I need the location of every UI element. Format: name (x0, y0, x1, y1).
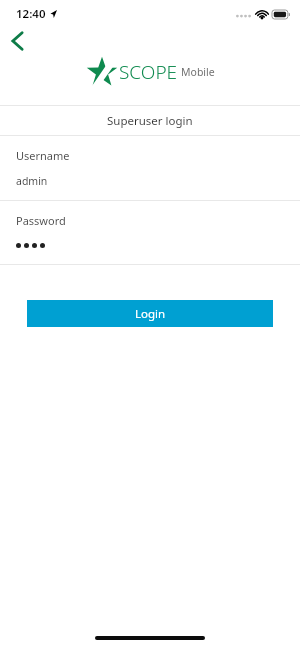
staticText: admin (16, 174, 48, 188)
staticText: Mobile (181, 65, 215, 79)
staticText: Username (16, 148, 70, 163)
staticText: Superuser login (107, 113, 193, 129)
staticText: Login (135, 306, 166, 322)
button[interactable]: Login (27, 300, 273, 327)
button[interactable]: Back (4, 28, 30, 54)
staticText: Password (16, 213, 66, 228)
staticText: 12:40 (16, 6, 46, 22)
staticText: SCOPE (119, 59, 178, 85)
